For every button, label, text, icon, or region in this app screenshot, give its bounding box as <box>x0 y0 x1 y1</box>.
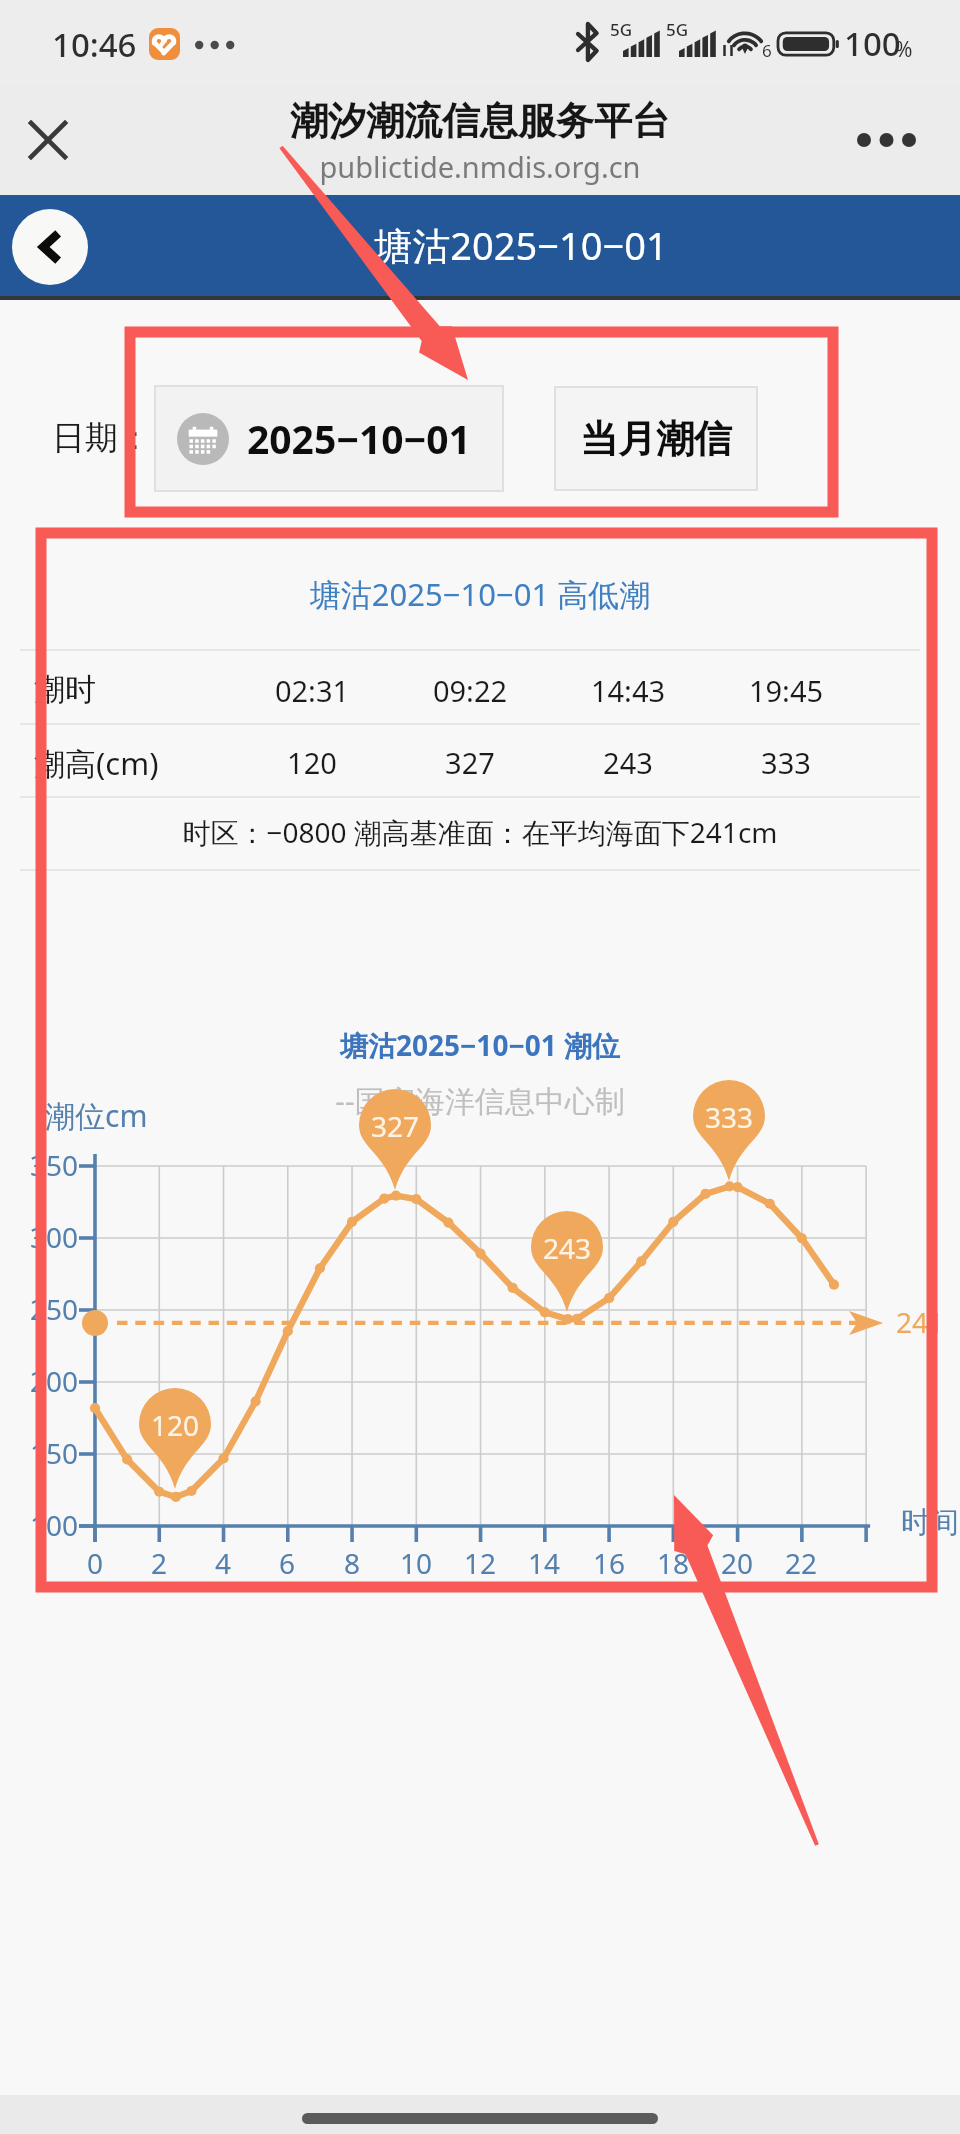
staticText: 200 <box>0 1362 78 1400</box>
staticText: 潮时 <box>34 670 96 709</box>
staticText: 22 <box>771 1544 831 1582</box>
staticText: 当月潮信 <box>580 415 732 463</box>
button[interactable]: 2025−10−01 <box>154 385 504 492</box>
staticText: 6 <box>257 1544 317 1582</box>
staticText: --国家海洋信息中心制 <box>130 1080 830 1121</box>
button[interactable]: Close <box>17 109 79 171</box>
staticText: 0 <box>65 1544 125 1582</box>
staticText: 243 <box>548 743 708 782</box>
staticText: 2025−10−01 <box>247 412 471 465</box>
staticText: 09:22 <box>390 671 550 710</box>
staticText: 120 <box>232 743 392 782</box>
staticText: 6 <box>762 39 772 62</box>
staticText: 时间 <box>901 1504 959 1541</box>
staticText: 100 <box>0 1506 78 1544</box>
staticText: 潮汐潮流信息服务平台 <box>130 97 830 145</box>
staticText: 时区：−0800 潮高基准面：在平均海面下241cm <box>70 813 890 851</box>
button[interactable]: Back <box>12 209 88 285</box>
staticText: 塘沽2025−10−01 <box>221 219 821 271</box>
staticText: publictide.nmdis.org.cn <box>130 147 830 186</box>
staticText: 150 <box>0 1434 78 1472</box>
staticText: 327 <box>390 743 550 782</box>
staticText: 5G <box>666 18 689 41</box>
staticText: 10:46 <box>52 22 137 67</box>
staticText: 100 <box>844 21 901 66</box>
staticText: 14 <box>514 1544 574 1582</box>
staticText: 4 <box>193 1544 253 1582</box>
staticText: 潮高(cm) <box>34 742 159 784</box>
button[interactable]: More options <box>845 113 931 167</box>
staticText: 12 <box>450 1544 510 1582</box>
staticText: 10 <box>386 1544 446 1582</box>
staticText: % <box>895 35 913 64</box>
staticText: 250 <box>0 1290 78 1328</box>
staticText: 2 <box>129 1544 189 1582</box>
staticText: 14:43 <box>548 671 708 710</box>
button[interactable]: 当月潮信 <box>554 386 758 491</box>
staticText: 18 <box>643 1544 703 1582</box>
staticText: 243 <box>531 1229 603 1267</box>
staticText: 16 <box>579 1544 639 1582</box>
staticText: 02:31 <box>232 671 392 710</box>
staticText: 327 <box>359 1107 431 1145</box>
staticText: 20 <box>707 1544 767 1582</box>
staticText: 333 <box>693 1098 765 1136</box>
staticText: 5G <box>610 18 633 41</box>
staticText: 潮位cm <box>45 1095 148 1136</box>
staticText: 241 <box>896 1303 945 1341</box>
staticText: 333 <box>706 743 866 782</box>
staticText: 塘沽2025−10−01 潮位 <box>130 1026 830 1064</box>
staticText: 19:45 <box>706 671 866 710</box>
staticText: 日期： <box>52 417 151 459</box>
staticText: 8 <box>322 1544 382 1582</box>
staticText: 塘沽2025−10−01 高低潮 <box>130 573 830 615</box>
staticText: 120 <box>139 1406 211 1444</box>
staticText: 350 <box>0 1146 78 1184</box>
staticText: 300 <box>0 1218 78 1256</box>
